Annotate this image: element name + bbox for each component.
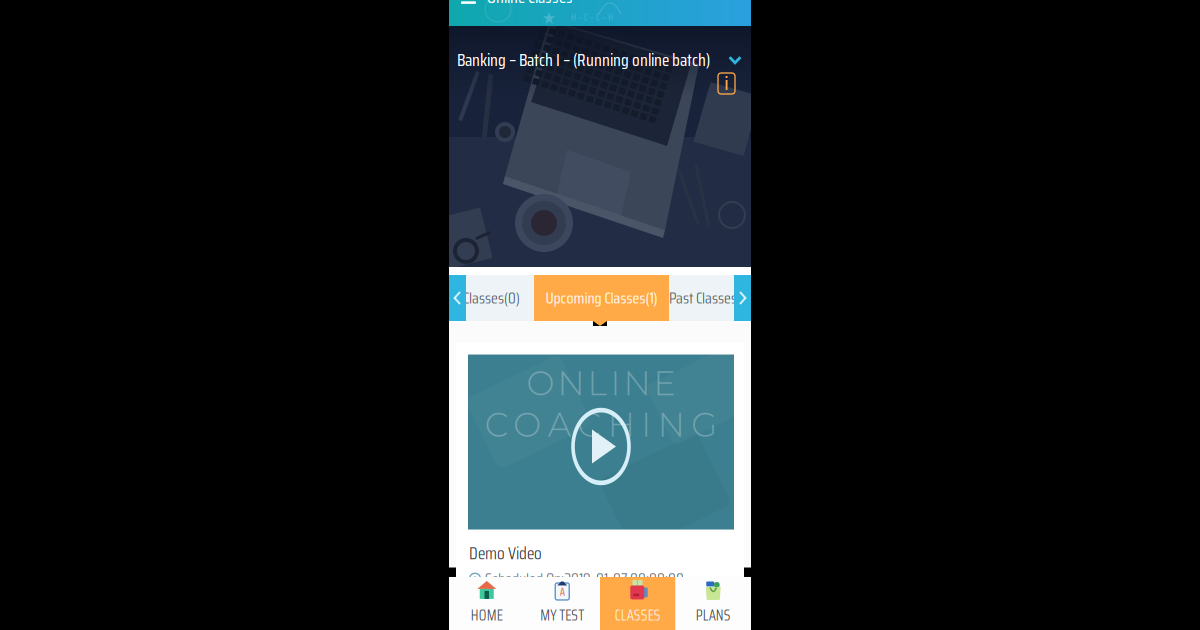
button[interactable]: Menu bbox=[459, 0, 478, 6]
staticText: ONLINE bbox=[526, 363, 675, 403]
staticText: COACHING bbox=[485, 404, 717, 445]
button[interactable]: Play Demo Video bbox=[468, 354, 734, 529]
staticText: MY TEST bbox=[540, 604, 584, 627]
staticText: ★ bbox=[542, 8, 556, 28]
staticText: Classes(0) bbox=[463, 285, 520, 311]
staticText: A bbox=[560, 584, 565, 600]
staticText: H – C – C – H bbox=[571, 10, 613, 25]
button[interactable]: CLASSES bbox=[600, 577, 675, 630]
button[interactable]: PLANS bbox=[675, 577, 751, 630]
staticText: Online Classes bbox=[487, 0, 573, 11]
staticText: PLANS bbox=[696, 604, 731, 627]
button[interactable]: Upcoming Classes(1) bbox=[534, 275, 669, 321]
button[interactable]: HOME bbox=[449, 577, 524, 630]
button[interactable]: Scroll tabs left bbox=[449, 275, 466, 321]
staticText: HOME bbox=[471, 604, 503, 627]
button[interactable]: A bbox=[524, 577, 600, 630]
staticText: Upcoming Classes(1) bbox=[545, 285, 657, 311]
staticText: Scheduled On:2019-01-07 00:00:00 bbox=[485, 566, 684, 591]
staticText: Demo Video bbox=[469, 539, 542, 567]
button[interactable]: Change batch bbox=[724, 51, 746, 69]
staticText: i bbox=[724, 69, 728, 98]
button[interactable]: Batch information bbox=[718, 73, 735, 94]
staticText: CLASSES bbox=[615, 604, 661, 627]
staticText: Banking – Batch I – (Running online batc… bbox=[457, 46, 710, 74]
staticText: Past Classes(3) bbox=[669, 285, 752, 311]
button[interactable]: Scroll tabs right bbox=[734, 275, 751, 321]
